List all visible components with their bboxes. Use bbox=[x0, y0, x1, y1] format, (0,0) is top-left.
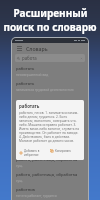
button[interactable]: работа, работница, обработка труда bbox=[12, 170, 88, 185]
staticText: Копировать bbox=[55, 149, 72, 153]
staticText: сущ. bbox=[16, 179, 23, 183]
staticText: работник bbox=[16, 187, 36, 193]
staticText: работа, работница, обработка труда bbox=[16, 157, 84, 163]
staticText: поиск по словарю bbox=[3, 20, 97, 34]
button[interactable]: Добавить в избранное bbox=[19, 148, 50, 157]
staticText: работать bbox=[19, 103, 40, 109]
staticText: Добавить в избранное bbox=[24, 149, 40, 156]
button[interactable]: работа, работница, обработка труда bbox=[12, 155, 88, 170]
button[interactable]: Меню bbox=[16, 45, 23, 52]
staticText: работа bbox=[22, 55, 37, 61]
button[interactable]: работник bbox=[12, 185, 88, 200]
staticText: заниматься трудовой деятельностью bbox=[16, 88, 74, 92]
staticText: работа, работница, обработка труда bbox=[16, 172, 84, 178]
staticText: Словарь bbox=[26, 45, 48, 52]
staticText: работать bbox=[16, 66, 35, 72]
staticText: Расширенный bbox=[13, 6, 88, 20]
staticText: сущ. bbox=[16, 164, 23, 168]
button[interactable]: работать bbox=[12, 79, 88, 94]
button[interactable]: работать bbox=[12, 64, 88, 79]
button[interactable]: Очистить bbox=[80, 57, 83, 60]
staticText: работать bbox=[16, 81, 35, 87]
staticText: работать, несов. 1. заниматься каким-либ… bbox=[19, 111, 81, 143]
button[interactable]: Копировать bbox=[50, 148, 81, 154]
staticText: тот кто работает, трудится bbox=[16, 194, 57, 198]
staticText: несовершенный вид bbox=[16, 73, 49, 77]
button[interactable]: работа bbox=[15, 54, 85, 62]
